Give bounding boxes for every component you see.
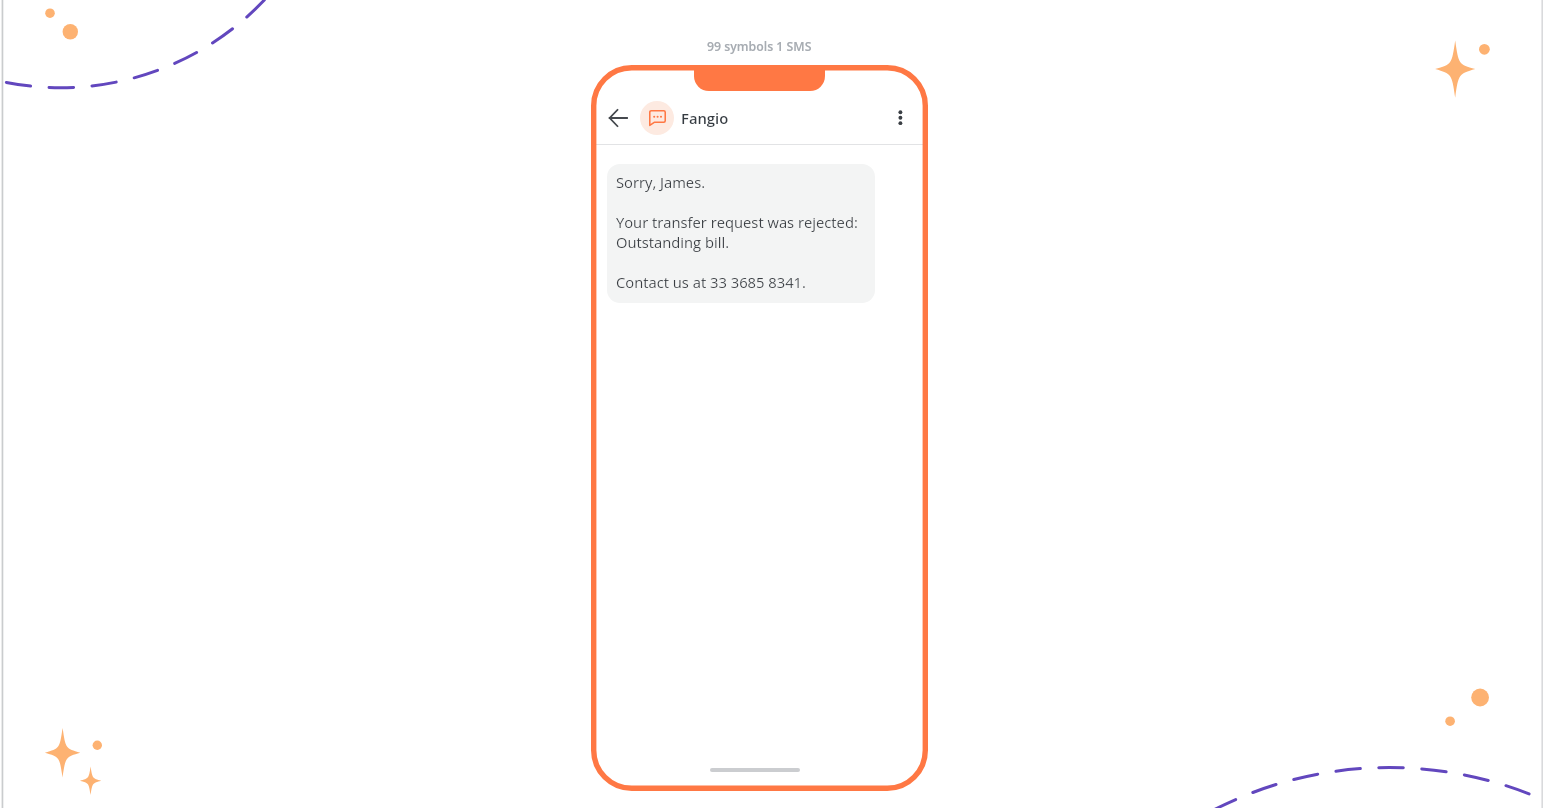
staticText: Sorry, James. Your transfer request was … [616,172,866,292]
staticText: 99 symbols 1 SMS [707,38,812,55]
button[interactable]: Back [605,105,631,131]
button[interactable]: More options [887,104,915,132]
staticText: Fangio [681,108,729,128]
button[interactable]: Fangio [640,101,729,135]
button[interactable]: Sorry, James. Your transfer request was … [607,164,875,303]
